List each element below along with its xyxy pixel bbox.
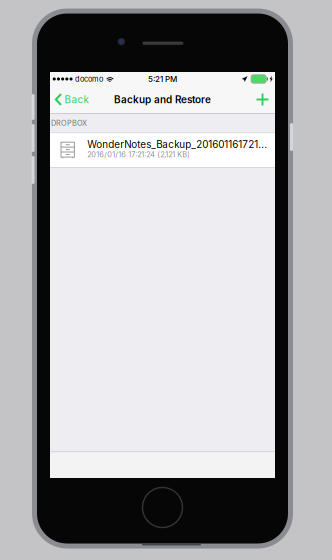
staticText: Backup and Restore: [114, 94, 211, 105]
staticText: Back: [65, 94, 89, 105]
staticText: 2016/01/16 17:21:24 (2,121 KB): [87, 150, 190, 159]
staticText: 5:21 PM: [148, 74, 177, 84]
staticText: DROPBOX: [51, 119, 87, 127]
staticText: docomo: [75, 75, 103, 83]
button[interactable]: Back: [50, 86, 97, 113]
button[interactable]: Add backup: [246, 86, 275, 113]
button[interactable]: WonderNotes_Backup_201601161721...: [50, 133, 275, 167]
staticText: WonderNotes_Backup_201601161721...: [87, 139, 267, 150]
